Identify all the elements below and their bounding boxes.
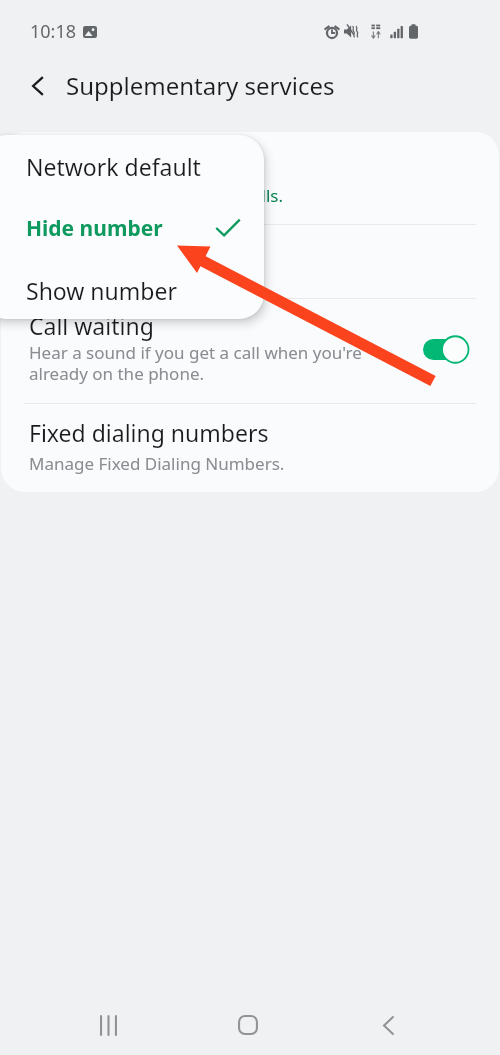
- staticText: Network default: [26, 151, 201, 182]
- staticText: Hear a sound if you get a call when you'…: [29, 341, 389, 385]
- button[interactable]: Navigate up: [14, 62, 62, 110]
- staticText: Hide number for outgoing calls.: [29, 184, 284, 207]
- staticText: Hide number: [26, 214, 163, 243]
- button[interactable]: Back: [358, 995, 418, 1055]
- staticText: Call forwarding: [29, 246, 195, 277]
- button[interactable]: Fixed dialing numbers: [1, 404, 499, 492]
- button[interactable]: Home: [218, 995, 278, 1055]
- staticText: Supplementary services: [66, 69, 335, 102]
- staticText: Show number: [26, 275, 177, 306]
- staticText: Fixed dialing numbers: [29, 417, 269, 448]
- button[interactable]: Network default: [0, 135, 264, 197]
- button[interactable]: Call waiting: [423, 336, 469, 363]
- staticText: 10:18: [30, 19, 77, 44]
- button[interactable]: Show number: [0, 259, 264, 319]
- staticText: Manage Fixed Dialing Numbers.: [29, 452, 285, 475]
- button[interactable]: Recent apps: [78, 995, 138, 1055]
- staticText: Call waiting: [29, 310, 154, 341]
- button[interactable]: Caller ID: [1, 132, 499, 224]
- button[interactable]: Call forwarding: [1, 225, 499, 298]
- staticText: Caller ID: [29, 149, 122, 180]
- button[interactable]: Hide number: [0, 197, 264, 259]
